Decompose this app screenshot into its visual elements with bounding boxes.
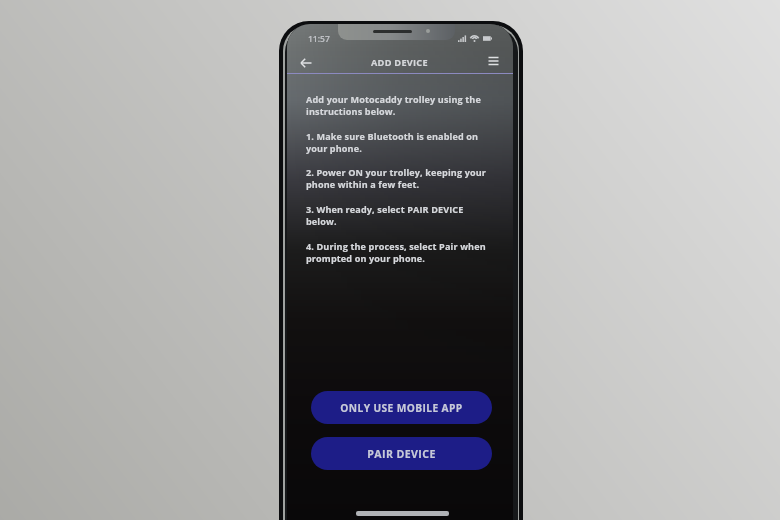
staticText: 3. When ready, select PAIR DEVICE below. [306,203,464,227]
staticText: 11:57 [308,33,330,45]
staticText: 1. Make sure Bluetooth is enabled on you… [306,130,479,154]
button[interactable]: Back [296,53,316,73]
button[interactable]: ONLY USE MOBILE APP [311,391,492,424]
staticText: Add your Motocaddy trolley using the ins… [306,93,481,117]
staticText: PAIR DEVICE [367,447,436,461]
staticText: ONLY USE MOBILE APP [340,401,463,415]
staticText: 2. Power ON your trolley, keeping your p… [306,166,487,190]
button[interactable]: Menu [483,51,503,71]
staticText: ADD DEVICE [371,56,428,69]
button[interactable]: PAIR DEVICE [311,437,492,470]
staticText: 4. During the process, select Pair when … [306,240,486,264]
